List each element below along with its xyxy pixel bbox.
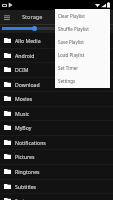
staticText: Pictures [15,153,35,160]
staticText: Notifications [15,139,46,146]
button[interactable]: Android [0,48,113,63]
button[interactable]: Allo Media [0,33,113,48]
staticText: Save Playlist [58,39,84,45]
button[interactable]: Shuffle Playlist [55,22,110,35]
staticText: Set Timer [58,65,79,71]
staticText: DCIM [15,66,29,73]
button[interactable]: Clear Playlist [55,9,110,22]
staticText: System [15,197,33,200]
button[interactable]: Settings [55,74,110,87]
staticText: Shuffle Playlist [58,26,89,32]
button[interactable]: Ringtones [0,164,113,179]
staticText: Allo Media [15,37,41,44]
staticText: Clear Playlist [58,13,85,19]
staticText: Download [15,81,40,88]
button[interactable]: System [0,193,113,200]
button[interactable]: Download [0,77,113,92]
button[interactable]: Music [0,106,113,121]
staticText: Settings [58,78,76,84]
button[interactable]: Open navigation drawer [0,10,14,24]
button[interactable]: Save Playlist [55,35,110,48]
button[interactable]: MyBoy [0,120,113,135]
button[interactable]: Set Timer [55,61,110,74]
staticText: Load Playlist [58,52,85,58]
staticText: Music [15,110,30,117]
button[interactable]: Movies [0,91,113,106]
staticText: Movies [15,95,33,102]
staticText: Android [15,52,35,59]
button[interactable]: Notifications [0,135,113,150]
staticText: MyBoy [15,124,32,131]
staticText: Ringtones [15,168,40,175]
staticText: Storage [22,13,43,21]
staticText: Subtitles [15,183,37,190]
button[interactable]: DCIM [0,62,113,77]
button[interactable]: Load Playlist [55,48,110,61]
button[interactable]: Subtitles [0,179,113,194]
button[interactable]: Pictures [0,149,113,164]
